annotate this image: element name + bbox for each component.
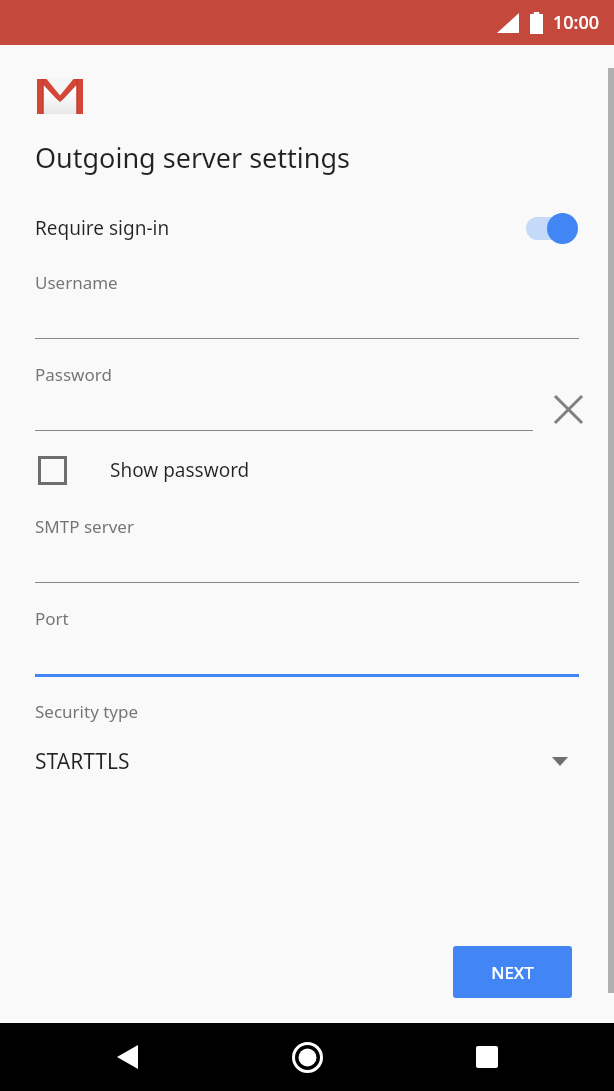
button[interactable]: Username [0, 271, 614, 339]
staticText: Show password [110, 457, 250, 483]
button[interactable]: Home [279, 1029, 335, 1085]
staticText: NEXT [491, 961, 534, 984]
button[interactable]: SMTP server [0, 515, 614, 583]
staticText: 10:00 [553, 10, 600, 35]
button[interactable]: Security type [0, 700, 614, 776]
button[interactable]: Recent apps [459, 1029, 515, 1085]
staticText: Username [35, 271, 118, 294]
button[interactable]: Back [99, 1029, 155, 1085]
staticText: Security type [35, 700, 139, 723]
staticText: Outgoing server settings [35, 139, 351, 176]
staticText: Password [35, 363, 112, 386]
staticText: Port [35, 607, 69, 630]
button[interactable]: NEXT [453, 946, 572, 998]
button[interactable]: Password [0, 363, 614, 431]
button[interactable]: Port [0, 607, 614, 677]
staticText: SMTP server [35, 515, 134, 538]
staticText: STARTTLS [35, 747, 130, 776]
button[interactable]: Show password [0, 448, 614, 492]
staticText: Require sign-in [35, 215, 170, 241]
button[interactable]: Require sign-in [0, 202, 614, 254]
button[interactable]: Clear password [548, 389, 588, 429]
button[interactable]: Require sign-in toggle [525, 212, 579, 244]
